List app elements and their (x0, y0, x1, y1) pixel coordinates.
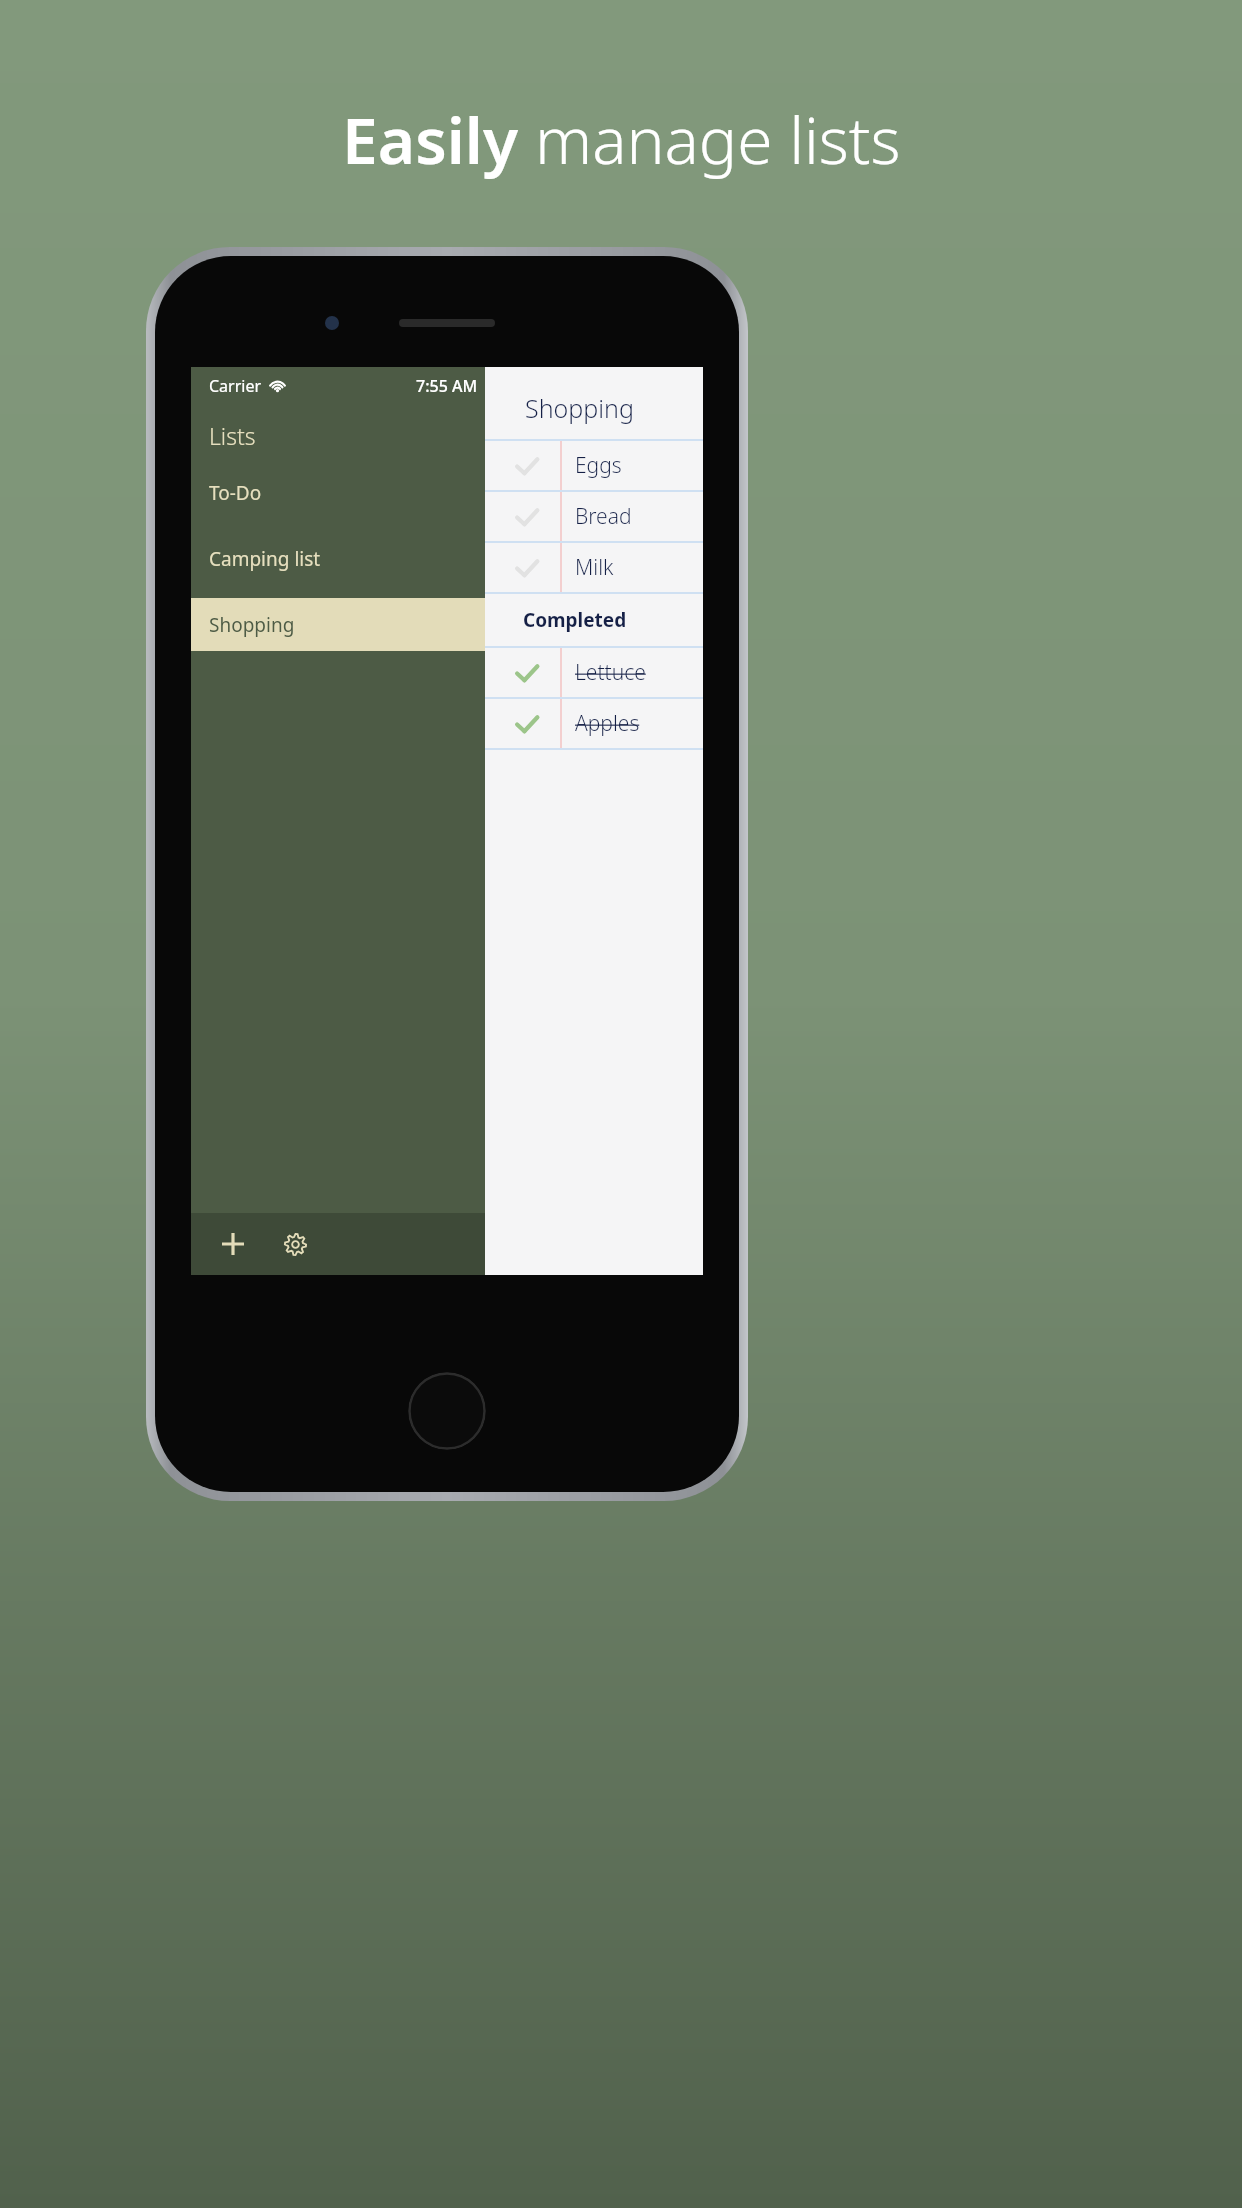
staticText: Shopping (525, 391, 634, 425)
button[interactable]: Delete To-Do (639, 470, 685, 516)
staticText: To-Do (209, 480, 262, 506)
button[interactable]: Bread (485, 492, 703, 541)
staticText: Carrier (209, 375, 262, 397)
staticText: Bread (575, 502, 632, 531)
button[interactable]: Delete Shopping (639, 602, 685, 648)
staticText: Lists (209, 420, 256, 451)
staticText: Lettuce (575, 658, 646, 687)
button[interactable]: Lettuce (485, 648, 703, 697)
button[interactable]: Edit To-Do (575, 470, 621, 516)
staticText: Completed (523, 607, 627, 633)
staticText: Easily (342, 96, 535, 183)
staticText: Apples (575, 709, 640, 738)
staticText: Shopping (209, 612, 295, 638)
button[interactable]: Eggs (485, 441, 703, 490)
staticText: manage lists (535, 96, 901, 183)
button[interactable]: Edit Shopping (575, 602, 621, 648)
button[interactable]: Edit Camping list (575, 536, 621, 582)
button[interactable]: Add list (209, 1220, 257, 1268)
button[interactable]: To-Do (191, 466, 703, 519)
staticText: Camping list (209, 546, 321, 572)
button[interactable]: Camping list (191, 532, 703, 585)
staticText: Eggs (575, 451, 622, 480)
staticText: 7:55 AM (416, 375, 478, 397)
button[interactable]: Apples (485, 699, 703, 748)
button[interactable]: Shopping (191, 598, 703, 651)
button[interactable]: Settings (271, 1220, 319, 1268)
button[interactable]: Delete Camping list (639, 536, 685, 582)
staticText: Milk (575, 553, 614, 582)
button[interactable]: Milk (485, 543, 703, 592)
